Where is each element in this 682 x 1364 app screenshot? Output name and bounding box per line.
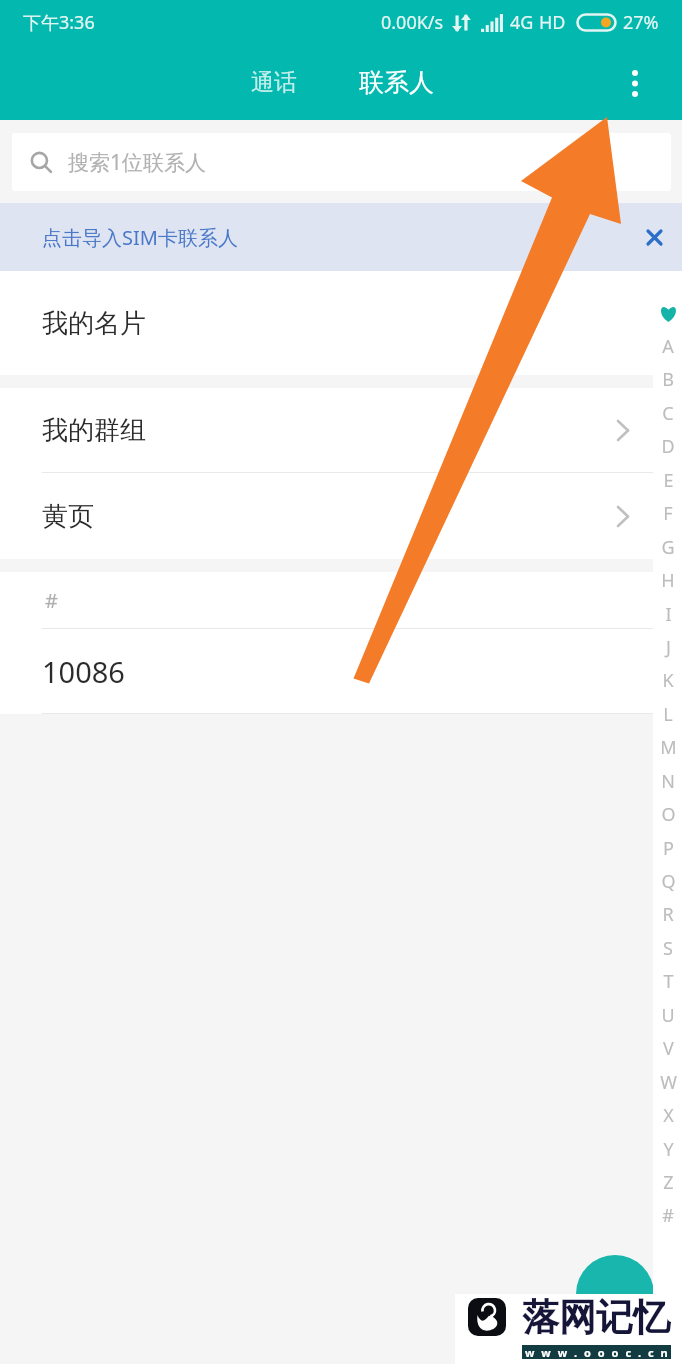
button[interactable]: Close: [636, 219, 672, 255]
button[interactable]: 搜索1位联系人: [12, 133, 671, 191]
staticText: V: [663, 1036, 674, 1061]
staticText: T: [663, 969, 674, 994]
staticText: R: [662, 902, 674, 927]
staticText: I: [665, 602, 672, 627]
staticText: 我的群组: [42, 414, 146, 447]
staticText: Q: [661, 869, 676, 894]
staticText: L: [663, 702, 673, 727]
button[interactable]: 10086: [0, 629, 682, 713]
staticText: #: [45, 587, 58, 614]
staticText: 点击导入SIM卡联系人: [42, 224, 238, 251]
staticText: H: [661, 568, 675, 593]
staticText: B: [662, 367, 674, 392]
staticText: M: [660, 735, 677, 760]
button[interactable]: 联系人: [351, 57, 442, 108]
staticText: #: [662, 1203, 674, 1228]
button[interactable]: More options: [606, 54, 664, 112]
staticText: Y: [663, 1137, 674, 1162]
button[interactable]: 点击导入SIM卡联系人: [0, 203, 682, 271]
staticText: S: [663, 936, 673, 961]
staticText: 10086: [42, 652, 125, 691]
staticText: P: [663, 836, 674, 861]
staticText: O: [661, 802, 676, 827]
staticText: w w w . o o o c . c n: [525, 1345, 669, 1359]
staticText: HD: [539, 10, 566, 35]
staticText: 4G: [510, 10, 534, 35]
button[interactable]: 我的群组: [0, 388, 682, 472]
button[interactable]: 我的名片: [0, 271, 682, 375]
staticText: 我的名片: [42, 307, 146, 340]
staticText: A: [662, 334, 674, 359]
staticText: G: [661, 535, 675, 560]
staticText: F: [663, 501, 673, 526]
button[interactable]: 通话: [243, 58, 305, 107]
staticText: 联系人: [359, 67, 434, 98]
staticText: N: [661, 769, 675, 794]
staticText: 搜索1位联系人: [68, 148, 207, 177]
staticText: 0.00K/s: [381, 10, 444, 35]
staticText: 落网记忆: [522, 1294, 670, 1341]
staticText: 27%: [623, 10, 659, 35]
button[interactable]: Add contact: [576, 1255, 654, 1333]
staticText: C: [662, 401, 674, 426]
staticText: 下午3:36: [23, 10, 95, 35]
staticText: J: [666, 635, 671, 660]
button[interactable]: 黄页: [0, 473, 682, 559]
staticText: X: [663, 1103, 674, 1128]
staticText: W: [660, 1070, 677, 1095]
staticText: K: [662, 668, 674, 693]
staticText: D: [661, 434, 675, 459]
staticText: E: [663, 468, 674, 493]
staticText: 通话: [251, 68, 297, 97]
staticText: 黄页: [42, 500, 94, 533]
staticText: U: [661, 1003, 675, 1028]
staticText: Z: [663, 1170, 674, 1195]
